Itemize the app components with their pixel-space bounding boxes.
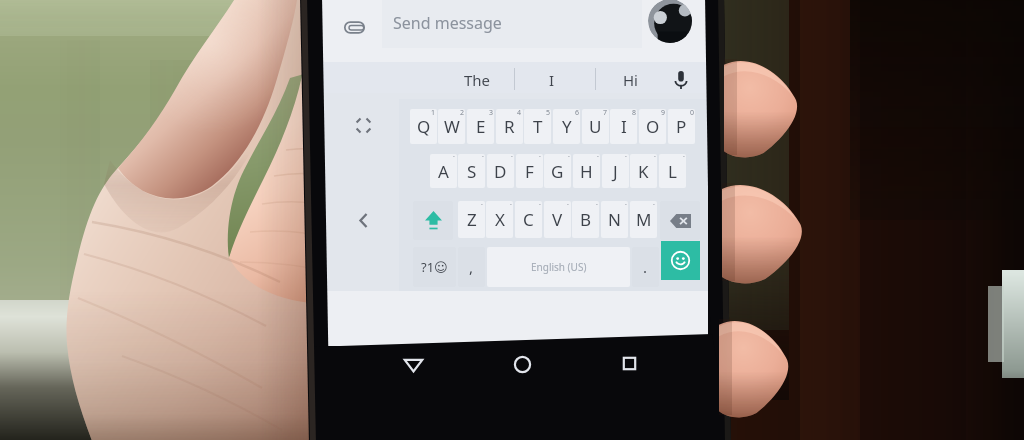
button[interactable]: Backspace [660,201,700,240]
staticText: S [467,160,477,183]
staticText: · [453,152,455,162]
staticText: 0 [690,108,695,118]
button[interactable]: T [524,109,551,144]
staticText: M [636,208,652,231]
staticText: H [580,160,593,183]
staticText: D [494,160,507,183]
button[interactable]: , [458,247,485,287]
staticText: · [597,152,599,162]
button[interactable]: Symbols [413,247,456,287]
staticText: English (US) [531,260,587,274]
button[interactable]: A [430,154,457,188]
staticText: 1 [431,108,436,118]
button[interactable]: U [582,109,609,144]
staticText: I [549,70,555,90]
button[interactable]: Attach file [337,10,371,44]
button[interactable]: V [544,201,571,238]
button[interactable]: Resize keyboard [350,112,376,138]
staticText: F [525,160,534,183]
button[interactable]: I [610,109,637,144]
button[interactable]: C [515,201,542,238]
staticText: · [510,200,512,210]
staticText: · [654,152,656,162]
button[interactable]: . [632,247,659,287]
button[interactable]: Emoji [661,241,700,280]
staticText: · [683,152,685,162]
button[interactable]: Profile picture [648,0,692,43]
staticText: O [646,115,660,138]
staticText: · [539,200,541,210]
staticText: 2 [460,108,465,118]
button[interactable]: Space [487,247,630,287]
staticText: U [589,115,602,138]
staticText: · [482,152,484,162]
staticText: Z [467,208,477,231]
staticText: T [533,115,543,138]
button[interactable]: K [630,154,657,188]
staticText: , [469,257,474,277]
button[interactable]: W [438,109,465,144]
button[interactable]: L [659,154,686,188]
button[interactable]: N [601,201,628,238]
button[interactable]: Send message [382,0,642,48]
button[interactable]: H [573,154,600,188]
staticText: The [464,70,491,90]
staticText: Y [562,115,572,138]
staticText: · [511,152,513,162]
staticText: 7 [603,108,608,118]
staticText: A [438,160,449,183]
staticText: . [643,257,648,277]
button[interactable]: X [486,201,513,238]
staticText: L [668,160,677,183]
button[interactable]: Shift [413,201,453,240]
button[interactable]: Back [350,207,376,233]
button[interactable]: D [487,154,514,188]
button[interactable]: B [572,201,599,238]
button[interactable]: J [602,154,629,188]
button[interactable]: Voice input [665,64,697,96]
button[interactable]: I [518,63,586,97]
button[interactable]: M [630,201,657,238]
staticText: N [608,208,621,231]
button[interactable]: R [496,109,523,144]
button[interactable]: F [516,154,543,188]
button[interactable]: G [544,154,571,188]
staticText: 4 [517,108,522,118]
button[interactable]: Z [458,201,485,238]
staticText: G [551,160,564,183]
staticText: 6 [575,108,580,118]
staticText: J [613,160,618,183]
button[interactable]: Recent apps [603,337,655,389]
staticText: W [444,115,460,138]
staticText: E [476,115,486,138]
staticText: · [568,152,570,162]
staticText: X [495,208,505,231]
button[interactable]: E [467,109,494,144]
staticText: · [481,200,483,210]
button[interactable]: Back [387,338,439,390]
button[interactable]: Y [553,109,580,144]
button[interactable]: O [639,109,666,144]
staticText: 3 [489,108,494,118]
button[interactable]: Home [496,338,548,390]
staticText: 5 [546,108,551,118]
staticText: · [625,200,627,210]
button[interactable]: The [443,63,511,97]
staticText: R [504,115,515,138]
staticText: · [653,200,655,210]
staticText: I [621,115,627,138]
button[interactable]: S [458,154,485,188]
button[interactable]: P [668,109,695,144]
staticText: · [625,152,627,162]
staticText: ?1☺ [421,258,448,276]
button[interactable]: Q [410,109,437,144]
staticText: C [523,208,534,231]
button[interactable]: Hi [596,63,664,97]
staticText: · [596,200,598,210]
staticText: 9 [661,108,666,118]
staticText: Send message [393,12,502,34]
staticText: · [567,200,569,210]
staticText: V [552,208,563,231]
staticText: Q [417,115,431,138]
staticText: B [580,208,592,231]
